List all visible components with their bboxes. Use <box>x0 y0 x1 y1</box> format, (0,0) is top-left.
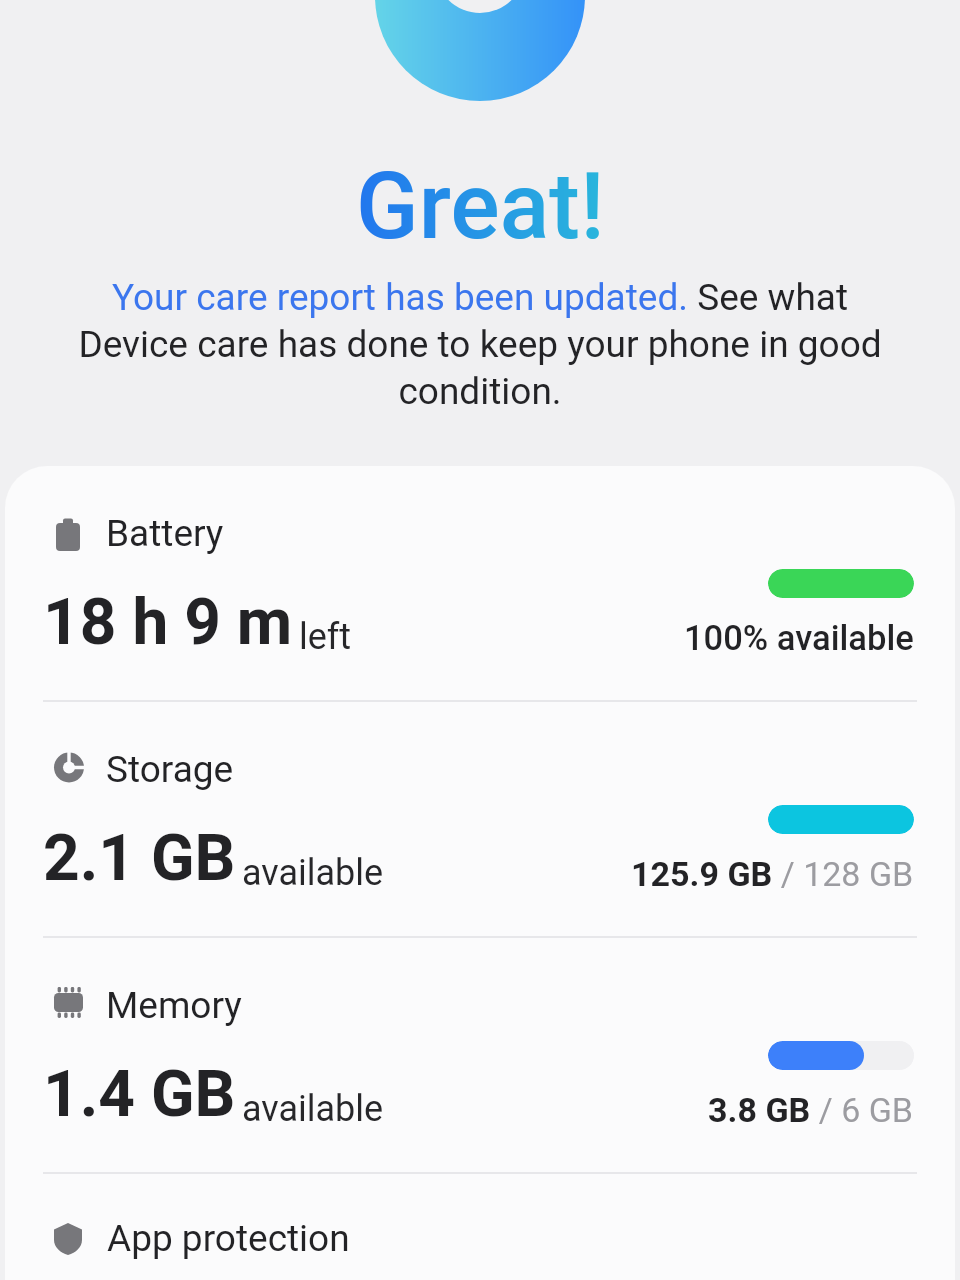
staticText: left <box>290 616 352 658</box>
button[interactable]: Storage <box>5 702 955 936</box>
staticText: Memory <box>106 984 242 1027</box>
other: Storage <box>54 753 86 789</box>
staticText: available <box>233 852 384 894</box>
button[interactable]: Memory <box>5 938 955 1172</box>
staticText: available <box>233 1088 384 1130</box>
button[interactable]: Battery <box>5 466 955 700</box>
staticText: 125.9 GB / 128 GB <box>631 854 914 894</box>
staticText: Great! <box>356 153 605 261</box>
staticText: 18 h 9 m <box>43 585 293 660</box>
staticText: 3.8 GB / 6 GB <box>708 1090 914 1130</box>
staticText: 2.1 GB <box>43 821 236 896</box>
button[interactable]: App protection <box>5 1174 955 1280</box>
staticText: Storage <box>106 748 234 791</box>
other: Memory <box>54 989 86 1025</box>
staticText: App protection <box>107 1217 350 1260</box>
staticText: 1.4 GB <box>43 1057 236 1132</box>
staticText: Battery <box>106 512 224 555</box>
staticText: Your care report has been updated. See w… <box>70 276 890 413</box>
staticText: 100% available <box>684 618 914 658</box>
other: App protection <box>54 1221 86 1257</box>
other: Battery <box>54 517 86 553</box>
